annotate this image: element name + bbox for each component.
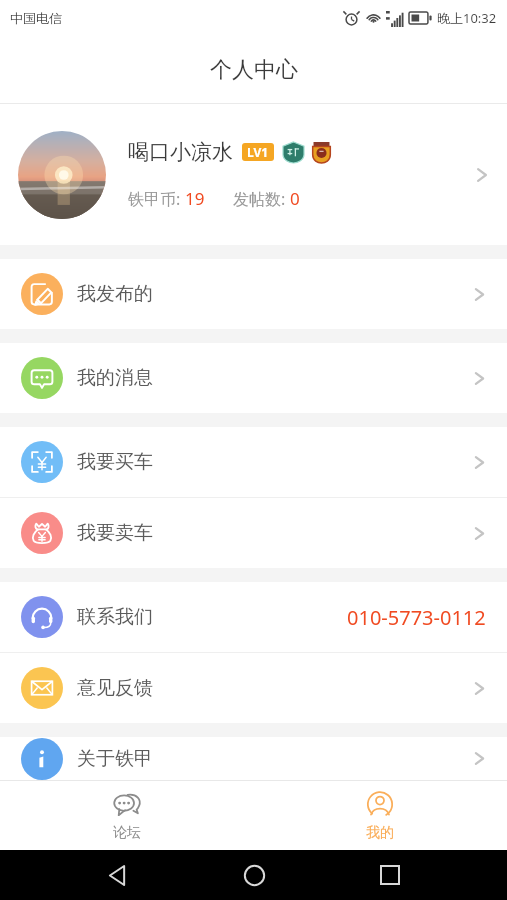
staticText: 19 [185,187,205,210]
button[interactable]: Back [97,855,137,895]
staticText: 晚上10:32 [437,9,497,27]
staticText: 论坛 [113,824,141,842]
button[interactable]: 我发布的 [0,259,507,329]
button[interactable]: 论坛 [0,781,253,850]
staticText: 发帖数: [233,188,290,210]
button[interactable]: Home [234,855,274,895]
button[interactable]: Recents [370,855,410,895]
staticText: 联系我们 [77,605,153,629]
staticText: 我要卖车 [77,521,153,545]
staticText: 铁甲币: [128,188,185,210]
staticText: 我要买车 [77,450,153,474]
button[interactable]: 我要卖车 [0,498,507,568]
button[interactable]: 关于铁甲 [0,737,507,780]
button[interactable]: 我要买车 [0,427,507,497]
staticText: 意见反馈 [77,676,153,700]
staticText: 我的消息 [77,366,153,390]
button[interactable]: 喝口小凉水 [0,104,507,245]
staticText: 个人中心 [210,56,298,84]
button[interactable]: 联系我们 [0,582,507,652]
staticText: 中国电信 [10,10,62,26]
staticText: 关于铁甲 [77,747,153,771]
staticText: 我发布的 [77,282,153,306]
button[interactable]: 意见反馈 [0,653,507,723]
button[interactable]: 我的消息 [0,343,507,413]
staticText: 我的 [366,824,394,842]
staticText: 喝口小凉水 [128,139,233,165]
button[interactable]: 我的 [253,781,507,850]
staticText: 0 [290,187,300,210]
staticText: LV1 [247,144,269,160]
staticText: 010-5773-0112 [347,604,486,631]
